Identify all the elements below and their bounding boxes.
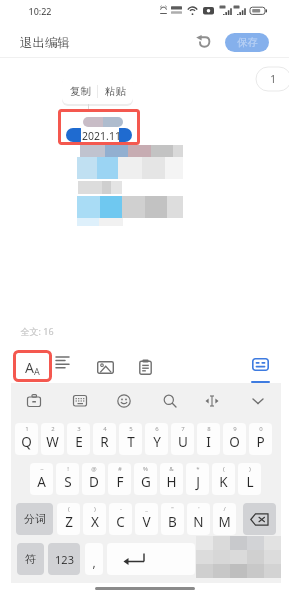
staticText: !: [67, 465, 69, 473]
staticText: 1: [270, 72, 276, 86]
button[interactable]: 7: [171, 423, 194, 455]
staticText: O: [229, 433, 240, 451]
button[interactable]: /: [213, 503, 236, 535]
button[interactable]: 粘贴: [98, 77, 132, 105]
staticText: *: [196, 465, 200, 473]
staticText: /: [223, 505, 226, 513]
staticText: C: [116, 513, 125, 531]
staticText: &: [169, 465, 174, 473]
button[interactable]: #: [108, 463, 131, 495]
staticText: 9: [233, 425, 237, 433]
button[interactable]: !: [56, 463, 79, 495]
button[interactable]: Undo: [192, 32, 214, 51]
staticText: 分词: [24, 512, 46, 526]
staticText: A: [25, 358, 34, 377]
button[interactable]: Clipboard: [23, 390, 45, 412]
button[interactable]: *: [186, 463, 209, 495]
button[interactable]: 123: [48, 543, 80, 575]
button[interactable]: 4: [93, 423, 116, 455]
staticText: 退出编辑: [20, 35, 70, 51]
staticText: 全文: 16: [20, 325, 54, 337]
button[interactable]: @: [82, 463, 105, 495]
button[interactable]: Enter: [107, 543, 195, 575]
button[interactable]: 分词: [16, 503, 53, 535]
button[interactable]: Text style: [13, 350, 52, 382]
button[interactable]: ): [238, 463, 261, 495]
staticText: W: [46, 433, 59, 451]
button[interactable]: -: [109, 503, 132, 535]
button[interactable]: 0: [249, 423, 272, 455]
button[interactable]: _: [135, 503, 158, 535]
staticText: F: [116, 473, 124, 491]
staticText: X: [91, 513, 99, 531]
staticText: 保存: [237, 36, 258, 49]
button[interactable]: 2: [41, 423, 64, 455]
staticText: V: [142, 513, 151, 531]
button[interactable]: &: [160, 463, 183, 495]
staticText: T: [127, 433, 135, 451]
button[interactable]: Emoji: [113, 390, 135, 412]
staticText: ,: [92, 554, 96, 570]
staticText: H: [166, 473, 177, 491]
button[interactable]: 6: [145, 423, 168, 455]
button[interactable]: 退出编辑: [20, 34, 70, 52]
staticText: R: [100, 433, 109, 451]
staticText: 7: [181, 425, 185, 433]
staticText: _: [145, 505, 148, 513]
staticText: 粘贴: [105, 85, 126, 98]
button[interactable]: Insert image: [94, 358, 116, 376]
staticText: D: [89, 473, 99, 491]
staticText: 2021.11: [82, 129, 121, 143]
staticText: E: [75, 433, 83, 451]
staticText: 4: [103, 425, 107, 433]
staticText: Q: [21, 433, 32, 451]
button[interactable]: 1: [256, 67, 289, 91]
staticText: U: [178, 433, 188, 451]
staticText: %: [143, 465, 148, 473]
button[interactable]: 3: [67, 423, 90, 455]
staticText: 0: [259, 425, 263, 433]
staticText: G: [141, 473, 151, 491]
staticText: @: [91, 465, 97, 473]
staticText: A: [34, 365, 40, 377]
button[interactable]: Backspace: [243, 503, 276, 535]
button[interactable]: 保存: [225, 33, 269, 52]
button[interactable]: Move cursor: [201, 390, 223, 412]
staticText: 3: [77, 425, 81, 433]
staticText: ): [94, 505, 96, 513]
button[interactable]: %: [134, 463, 157, 495]
staticText: ): [249, 465, 251, 473]
button[interactable]: (: [57, 503, 80, 535]
staticText: Y: [153, 433, 161, 451]
button[interactable]: ): [83, 503, 106, 535]
button[interactable]: 复制: [63, 77, 97, 105]
staticText: (: [68, 505, 70, 513]
button[interactable]: 8: [197, 423, 220, 455]
button[interactable]: 1: [15, 423, 38, 455]
button[interactable]: Hide keyboard: [247, 390, 269, 412]
button[interactable]: ,: [85, 543, 103, 575]
staticText: I: [206, 433, 211, 451]
staticText: 复制: [70, 85, 91, 98]
button[interactable]: Keyboard: [250, 356, 270, 372]
staticText: M: [218, 513, 231, 531]
staticText: 6: [155, 425, 159, 433]
button[interactable]: Keyboard layout: [69, 390, 91, 412]
button[interactable]: ~: [30, 463, 53, 495]
button[interactable]: 5: [119, 423, 142, 455]
staticText: 2: [51, 425, 55, 433]
staticText: P: [256, 433, 265, 451]
staticText: A: [37, 473, 46, 491]
staticText: S: [64, 473, 72, 491]
staticText: #: [118, 465, 122, 473]
button[interactable]: Align text: [52, 352, 74, 374]
staticText: ~: [40, 465, 44, 473]
button[interactable]: ': [187, 503, 210, 535]
button[interactable]: 9: [223, 423, 246, 455]
button[interactable]: (: [212, 463, 235, 495]
staticText: ": [171, 505, 174, 513]
button[interactable]: ": [161, 503, 184, 535]
button[interactable]: 符: [17, 543, 44, 575]
button[interactable]: Template: [134, 357, 156, 377]
button[interactable]: Search: [159, 390, 181, 412]
